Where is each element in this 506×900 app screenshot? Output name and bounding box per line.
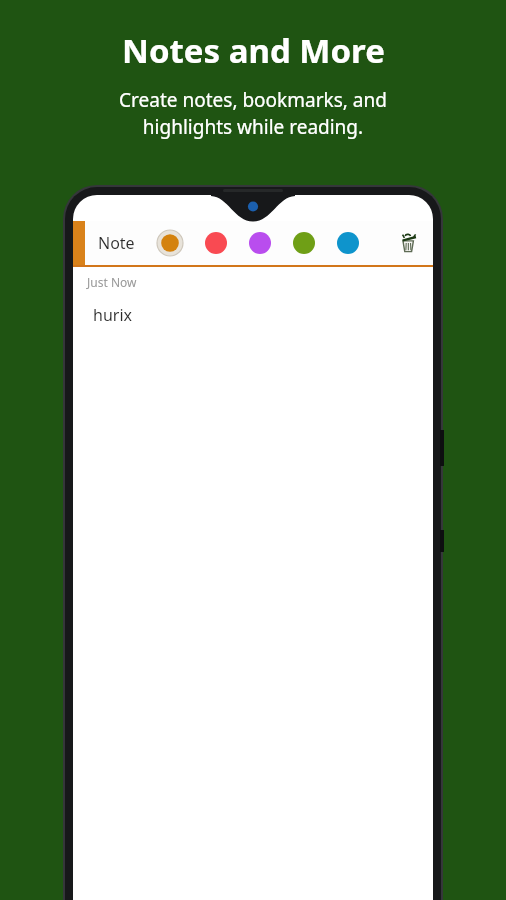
button[interactable]: Colour swatch xyxy=(157,230,183,256)
button[interactable]: Note xyxy=(98,232,135,254)
staticText: Create notes, bookmarks, and highlights … xyxy=(119,87,387,140)
button[interactable]: Delete note xyxy=(391,226,425,260)
button[interactable]: Colour swatch xyxy=(205,232,227,254)
button[interactable]: Colour swatch xyxy=(293,232,315,254)
staticText: hurix xyxy=(93,304,132,326)
staticText: Just Now xyxy=(87,274,137,290)
button[interactable]: Colour swatch xyxy=(249,232,271,254)
staticText: Note xyxy=(98,232,135,254)
staticText: Notes and More xyxy=(122,28,385,73)
button[interactable]: Colour swatch xyxy=(337,232,359,254)
